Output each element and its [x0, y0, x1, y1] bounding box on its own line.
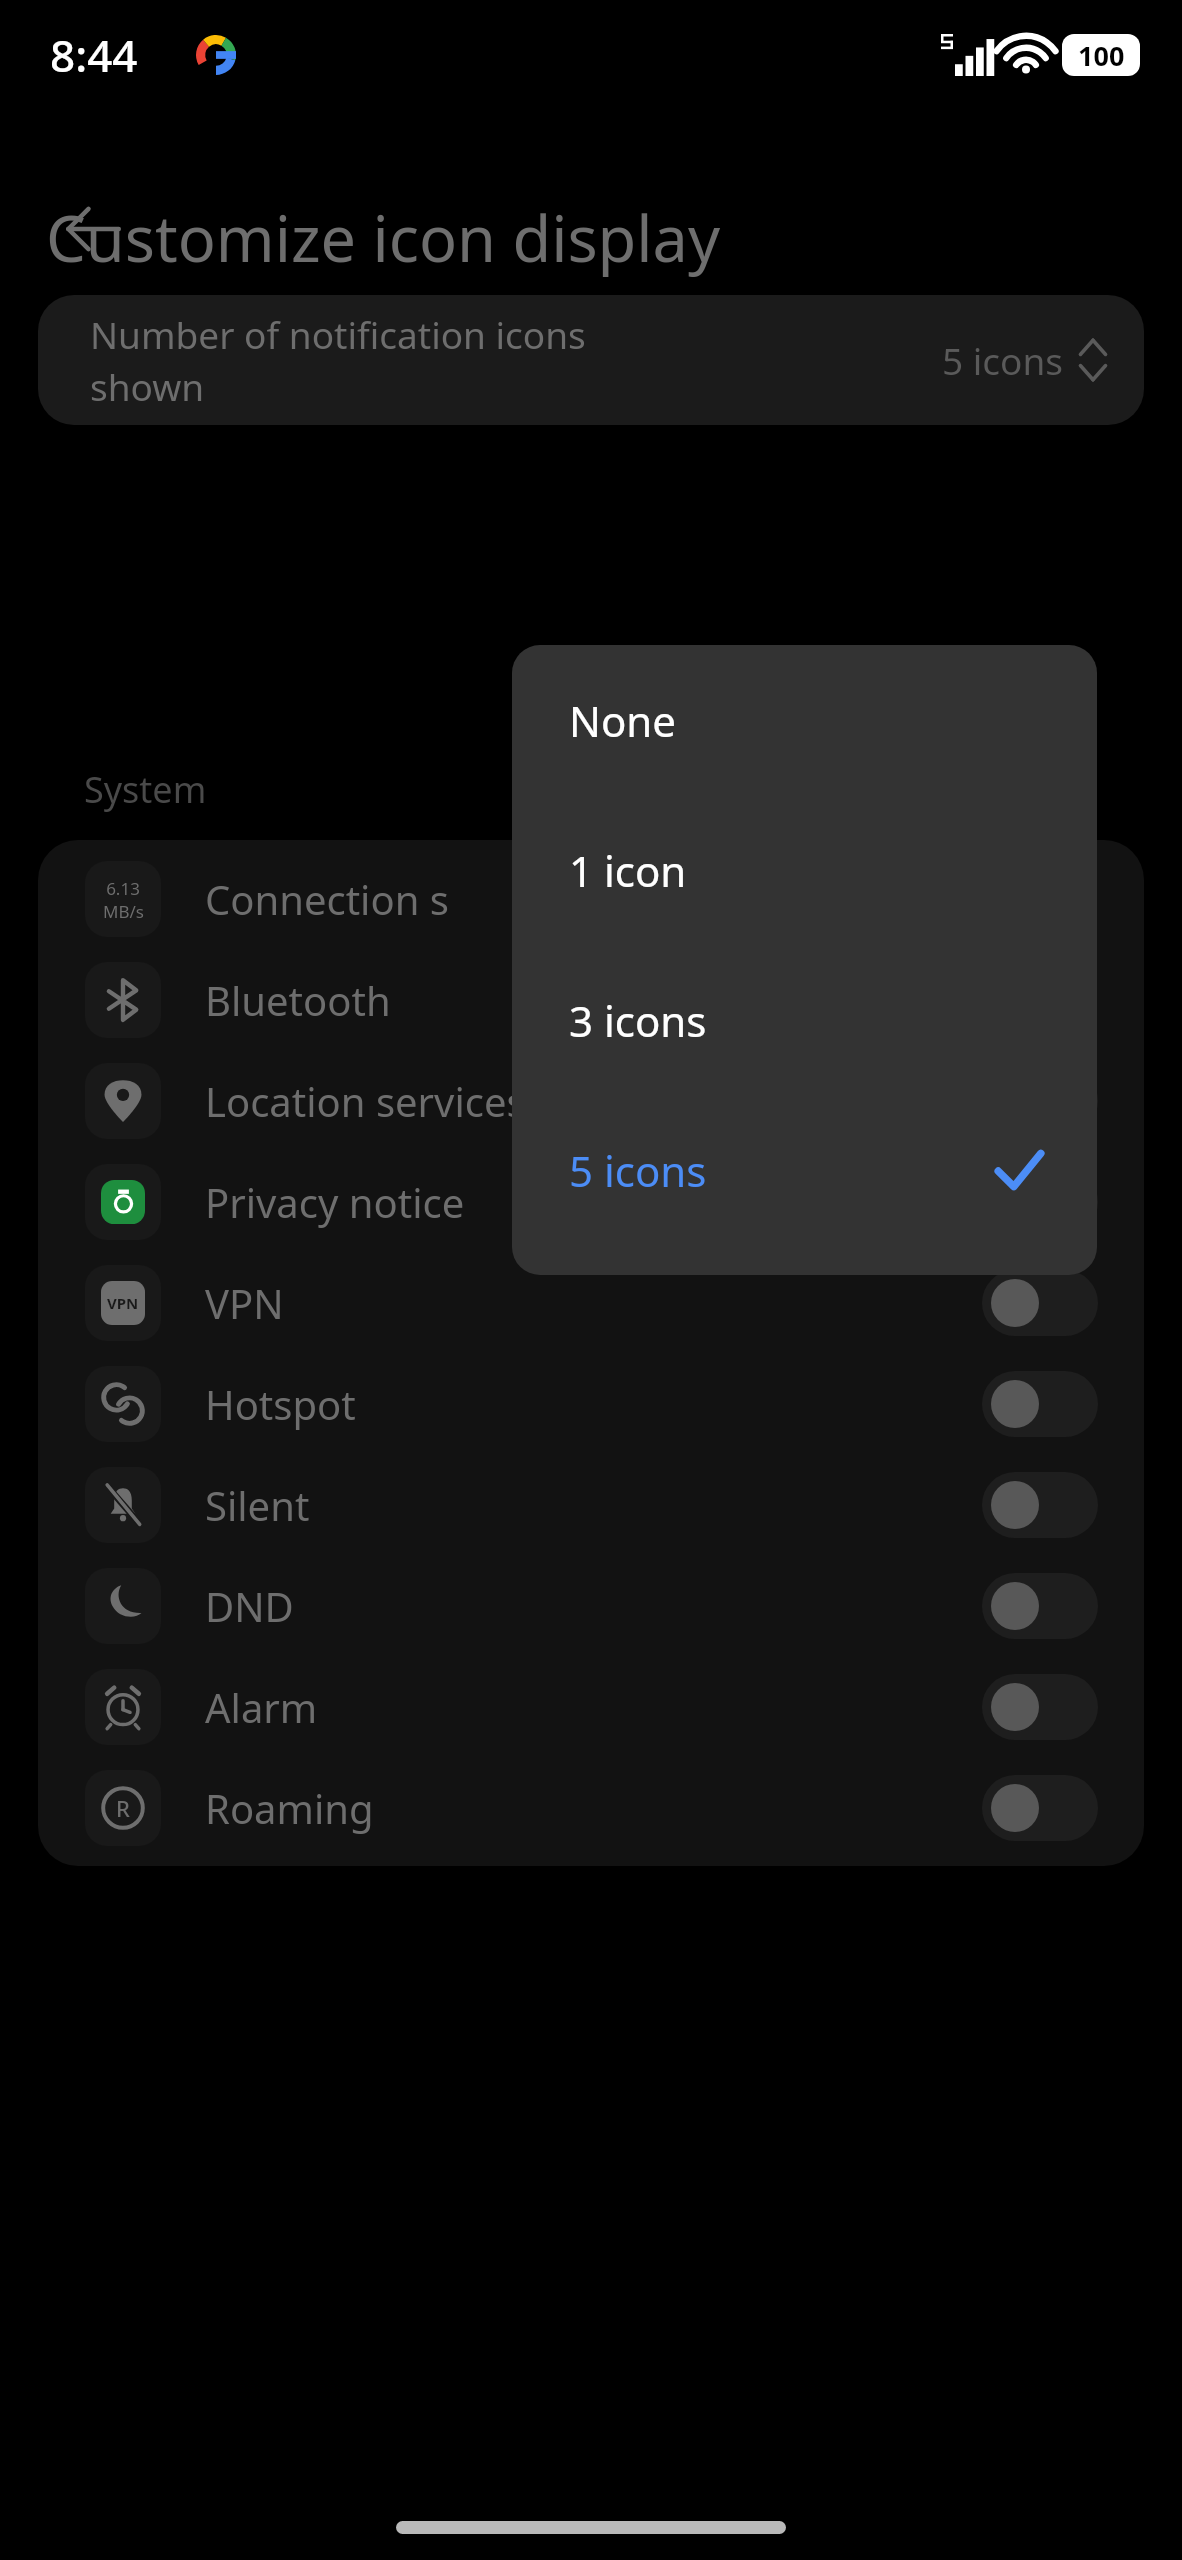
button[interactable] [982, 1573, 1098, 1639]
staticText: VPN [107, 1293, 139, 1313]
staticText: Number of notification icons shown [90, 309, 586, 412]
button[interactable]: Hotspot [38, 1353, 1144, 1454]
button[interactable]: Alarm [38, 1656, 1144, 1757]
button[interactable]: Silent [38, 1454, 1144, 1555]
button[interactable]: VPN [38, 1252, 1144, 1353]
staticText: Alarm [205, 1680, 982, 1734]
button[interactable]: Location services [38, 1050, 1144, 1151]
button[interactable] [982, 1371, 1098, 1437]
button[interactable]: 1 icon [512, 795, 1097, 945]
staticText: VPN [205, 1276, 982, 1330]
staticText: 5 icons [569, 1142, 707, 1199]
button[interactable]: Number of notification icons shown [38, 295, 1144, 425]
staticText: 1 icon [569, 842, 687, 899]
staticText: DND [205, 1579, 982, 1633]
staticText: 100 [1078, 37, 1125, 74]
button[interactable] [982, 1270, 1098, 1336]
button[interactable]: Bluetooth [38, 949, 1144, 1050]
button[interactable] [982, 1472, 1098, 1538]
button[interactable] [982, 1775, 1098, 1841]
button[interactable] [982, 1169, 1098, 1235]
staticText: 6.13 [106, 877, 140, 900]
staticText: Roaming [205, 1781, 982, 1835]
staticText: Customize icon display [46, 195, 721, 281]
staticText: 5 icons [942, 335, 1064, 385]
staticText: MB/s [103, 900, 144, 921]
staticText: Silent [205, 1478, 982, 1532]
button[interactable]: DND [38, 1555, 1144, 1656]
button[interactable]: 6.13 [38, 848, 1144, 949]
staticText: 3 icons [569, 992, 707, 1049]
staticText: Bluetooth [205, 973, 1098, 1027]
staticText: 8:44 [50, 25, 138, 85]
staticText: Location services [205, 1074, 982, 1128]
staticText: None [569, 692, 676, 749]
button[interactable]: 3 icons [512, 945, 1097, 1095]
button[interactable]: 5 icons [512, 1095, 1097, 1245]
staticText: Hotspot [205, 1377, 982, 1431]
button[interactable] [982, 1674, 1098, 1740]
button[interactable]: Privacy notice [38, 1151, 1144, 1252]
button[interactable]: R [38, 1757, 1144, 1858]
button[interactable]: None [512, 645, 1097, 795]
staticText: R [116, 1793, 130, 1823]
staticText: System [84, 765, 207, 814]
staticText: Privacy notice [205, 1175, 982, 1229]
button[interactable]: Back [38, 174, 148, 284]
staticText: Connection s [205, 872, 1098, 926]
